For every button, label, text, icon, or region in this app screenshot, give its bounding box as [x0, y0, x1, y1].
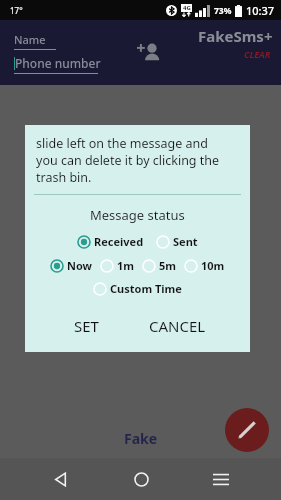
button[interactable]: 1m	[98, 257, 137, 274]
button[interactable]: 10m	[182, 257, 227, 274]
button[interactable]: Home	[121, 459, 161, 499]
staticText: CANCEL	[149, 316, 206, 336]
staticText: 4G	[183, 4, 191, 12]
button[interactable]: Add contact	[131, 35, 167, 71]
button[interactable]: SET	[60, 310, 113, 342]
button[interactable]: 5m	[140, 257, 179, 274]
button[interactable]: Custom Time	[91, 280, 184, 297]
staticText: Message status	[90, 206, 185, 224]
staticText: Phone number	[15, 55, 101, 71]
staticText: SET	[74, 316, 99, 336]
button[interactable]: CANCEL	[139, 310, 216, 342]
button[interactable]: Recent apps	[201, 459, 241, 499]
staticText: Received	[94, 234, 144, 249]
button[interactable]: Sent	[154, 233, 200, 250]
button[interactable]: Back	[40, 459, 80, 499]
staticText: Sent	[173, 234, 198, 249]
staticText: slide left on the message and you can de…	[36, 135, 220, 186]
staticText: Name	[14, 32, 46, 47]
staticText: Custom Time	[110, 281, 182, 296]
staticText: 1m	[117, 258, 135, 273]
staticText: CLEAR	[244, 48, 271, 60]
staticText: 10m	[201, 258, 225, 273]
button[interactable]: Compose new message	[225, 408, 269, 452]
staticText: Now	[67, 258, 93, 273]
staticText: 10:37	[246, 3, 275, 18]
staticText: 73%	[214, 5, 232, 17]
staticText: Fake	[124, 429, 158, 448]
staticText: 17°	[10, 5, 23, 16]
button[interactable]: Received	[75, 233, 146, 250]
button[interactable]: CLEAR	[242, 47, 273, 61]
button[interactable]: Now	[48, 257, 95, 274]
staticText: FakeSms+	[198, 26, 273, 46]
staticText: 5m	[159, 258, 177, 273]
